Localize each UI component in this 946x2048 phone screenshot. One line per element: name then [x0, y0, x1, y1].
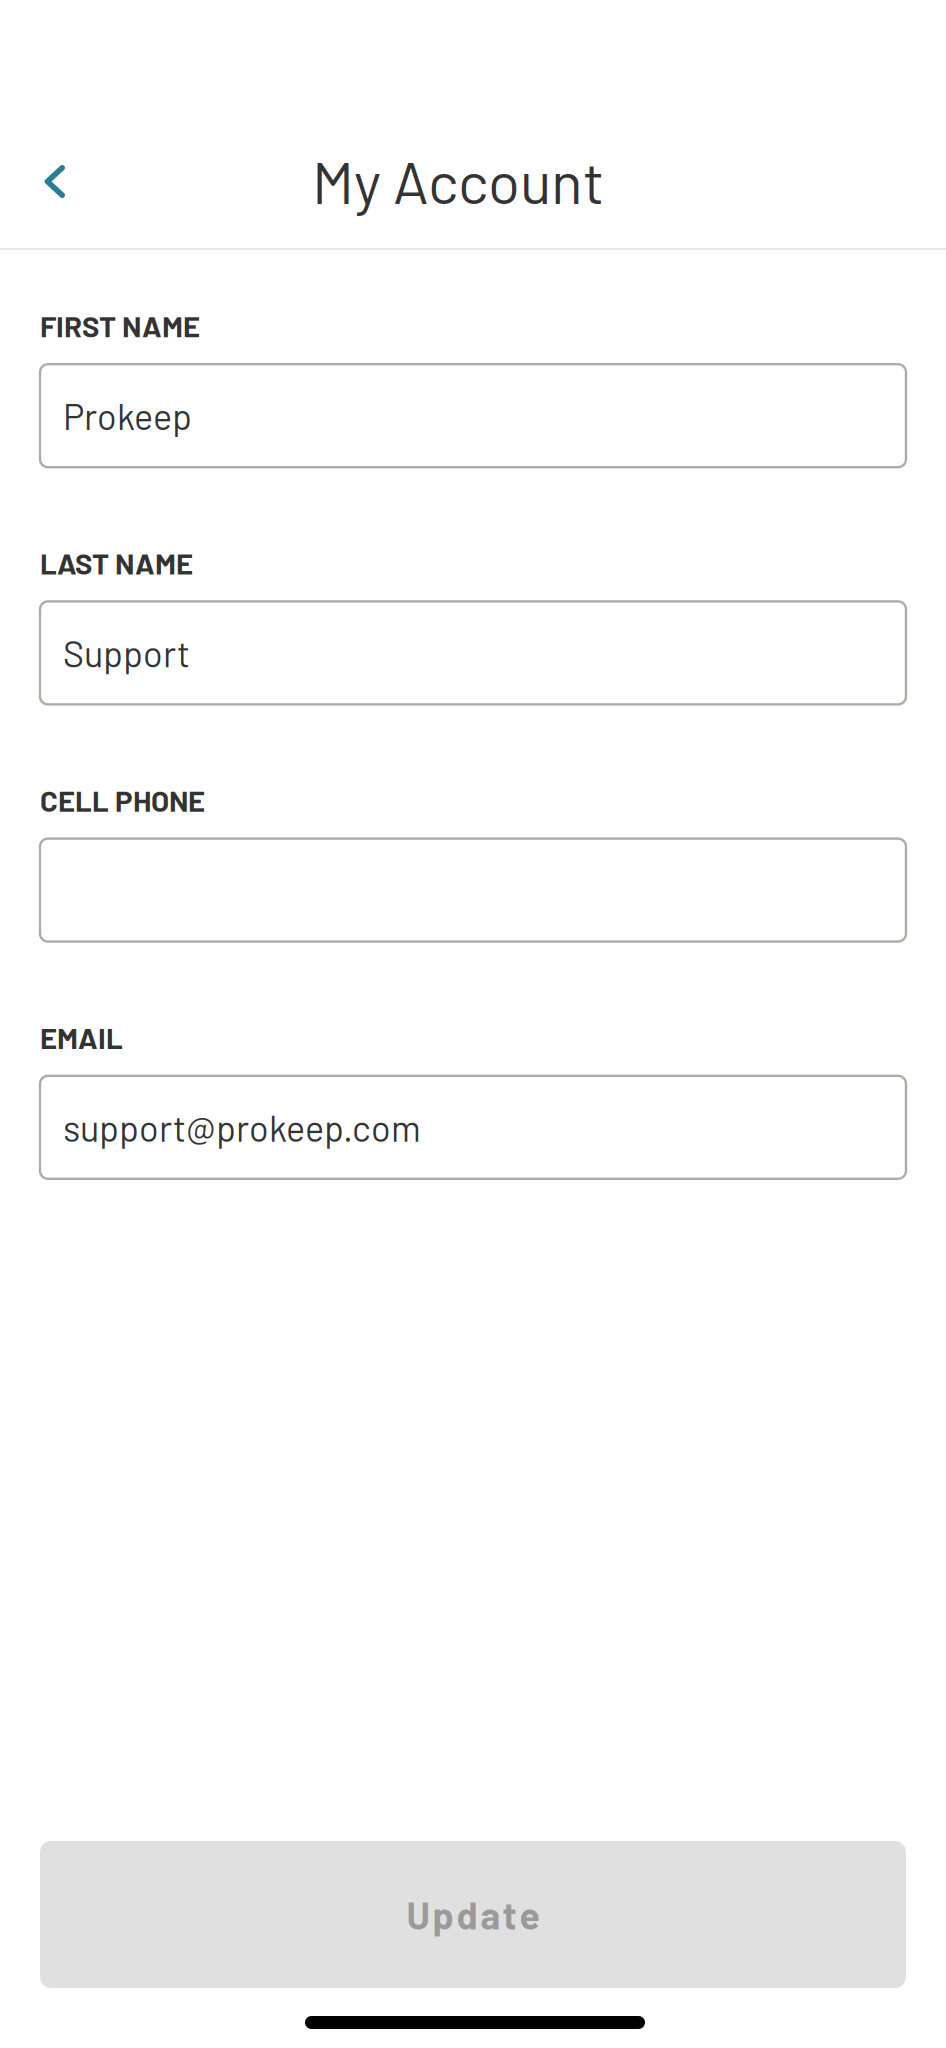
button[interactable]: support@prokeep.com: [40, 1076, 906, 1179]
button[interactable]: Update: [40, 1841, 906, 1988]
staticText: FIRST NAME: [40, 308, 200, 343]
button[interactable]: Prokeep: [40, 364, 906, 467]
staticText: My Account: [312, 145, 604, 216]
staticText: LAST NAME: [40, 545, 193, 580]
button[interactable]: Back: [0, 145, 96, 222]
staticText: Update: [406, 1892, 539, 1937]
staticText: EMAIL: [40, 1020, 123, 1055]
button[interactable]: [40, 839, 906, 942]
staticText: support@prokeep.com: [63, 1106, 421, 1149]
button[interactable]: Support: [40, 601, 906, 704]
staticText: Support: [63, 631, 190, 674]
staticText: CELL PHONE: [40, 782, 205, 818]
staticText: Prokeep: [63, 394, 192, 437]
